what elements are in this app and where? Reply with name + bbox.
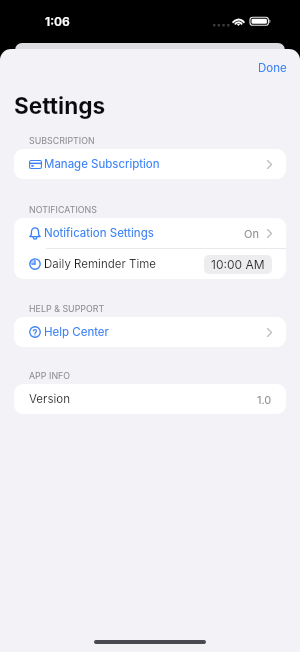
staticText: Manage Subscription <box>44 157 160 171</box>
staticText: Version <box>29 392 70 406</box>
button[interactable]: Notification Settings <box>14 218 286 248</box>
staticText: Help Center <box>44 325 109 339</box>
staticText: 10:00 AM <box>211 257 265 272</box>
button[interactable]: 10:00 AM <box>204 255 272 274</box>
button[interactable]: Done <box>253 58 292 78</box>
staticText: On <box>244 227 259 240</box>
button[interactable]: Help Center <box>14 317 286 347</box>
staticText: Daily Reminder Time <box>44 257 156 271</box>
staticText: Notification Settings <box>44 226 154 240</box>
button[interactable]: Daily Reminder Time <box>14 249 286 279</box>
staticText: 1:06 <box>45 14 70 29</box>
staticText: HELP & SUPPORT <box>29 303 105 314</box>
staticText: NOTIFICATIONS <box>29 204 97 215</box>
staticText: Settings <box>14 92 106 119</box>
staticText: SUBSCRIPTION <box>29 135 95 146</box>
staticText: Done <box>258 61 287 75</box>
staticText: APP INFO <box>29 370 71 381</box>
staticText: 1.0 <box>257 393 272 406</box>
button[interactable]: Manage Subscription <box>14 149 286 179</box>
button[interactable]: Version <box>14 384 286 414</box>
